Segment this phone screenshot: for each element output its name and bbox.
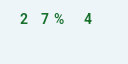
staticText: % <box>54 11 65 27</box>
staticText: 4 <box>84 11 93 27</box>
staticText: 7 <box>41 11 50 27</box>
staticText: 2 <box>20 11 29 27</box>
